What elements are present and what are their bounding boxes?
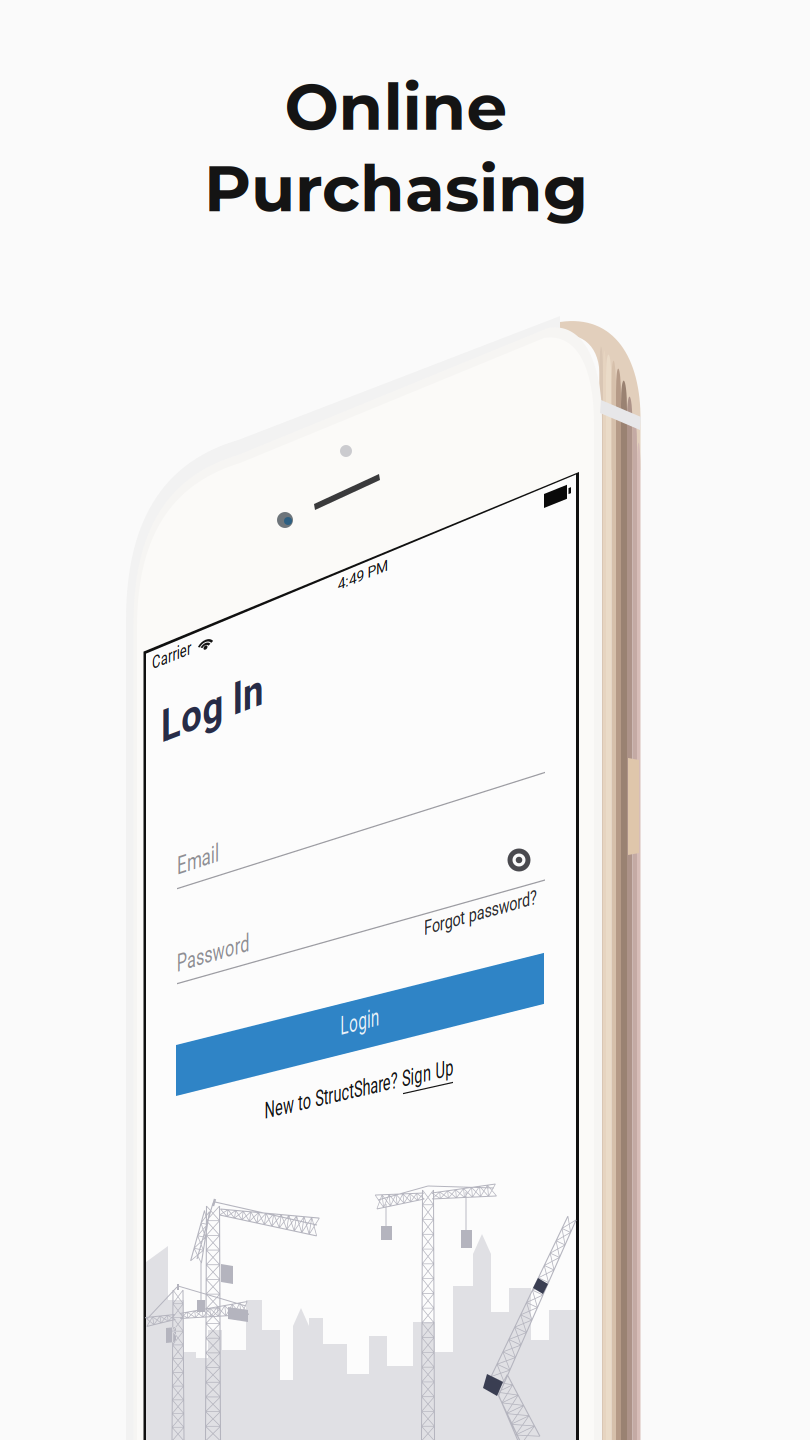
staticText: Carrier — [152, 653, 206, 674]
staticText: 4:49 PM — [338, 576, 392, 594]
button[interactable]: Login — [0, 0, 810, 1440]
button[interactable]: New to StructShare? Sign Up — [0, 0, 810, 1440]
staticText: Forgot password? — [424, 916, 583, 940]
staticText: Online — [284, 67, 507, 146]
staticText: Login — [339, 1011, 402, 1041]
staticText: Email — [176, 852, 236, 880]
staticText: Log In — [161, 700, 287, 753]
staticText: New to StructShare? Sign Up — [264, 1097, 552, 1124]
staticText: Purchasing — [204, 149, 588, 227]
staticText: Password — [176, 949, 282, 977]
